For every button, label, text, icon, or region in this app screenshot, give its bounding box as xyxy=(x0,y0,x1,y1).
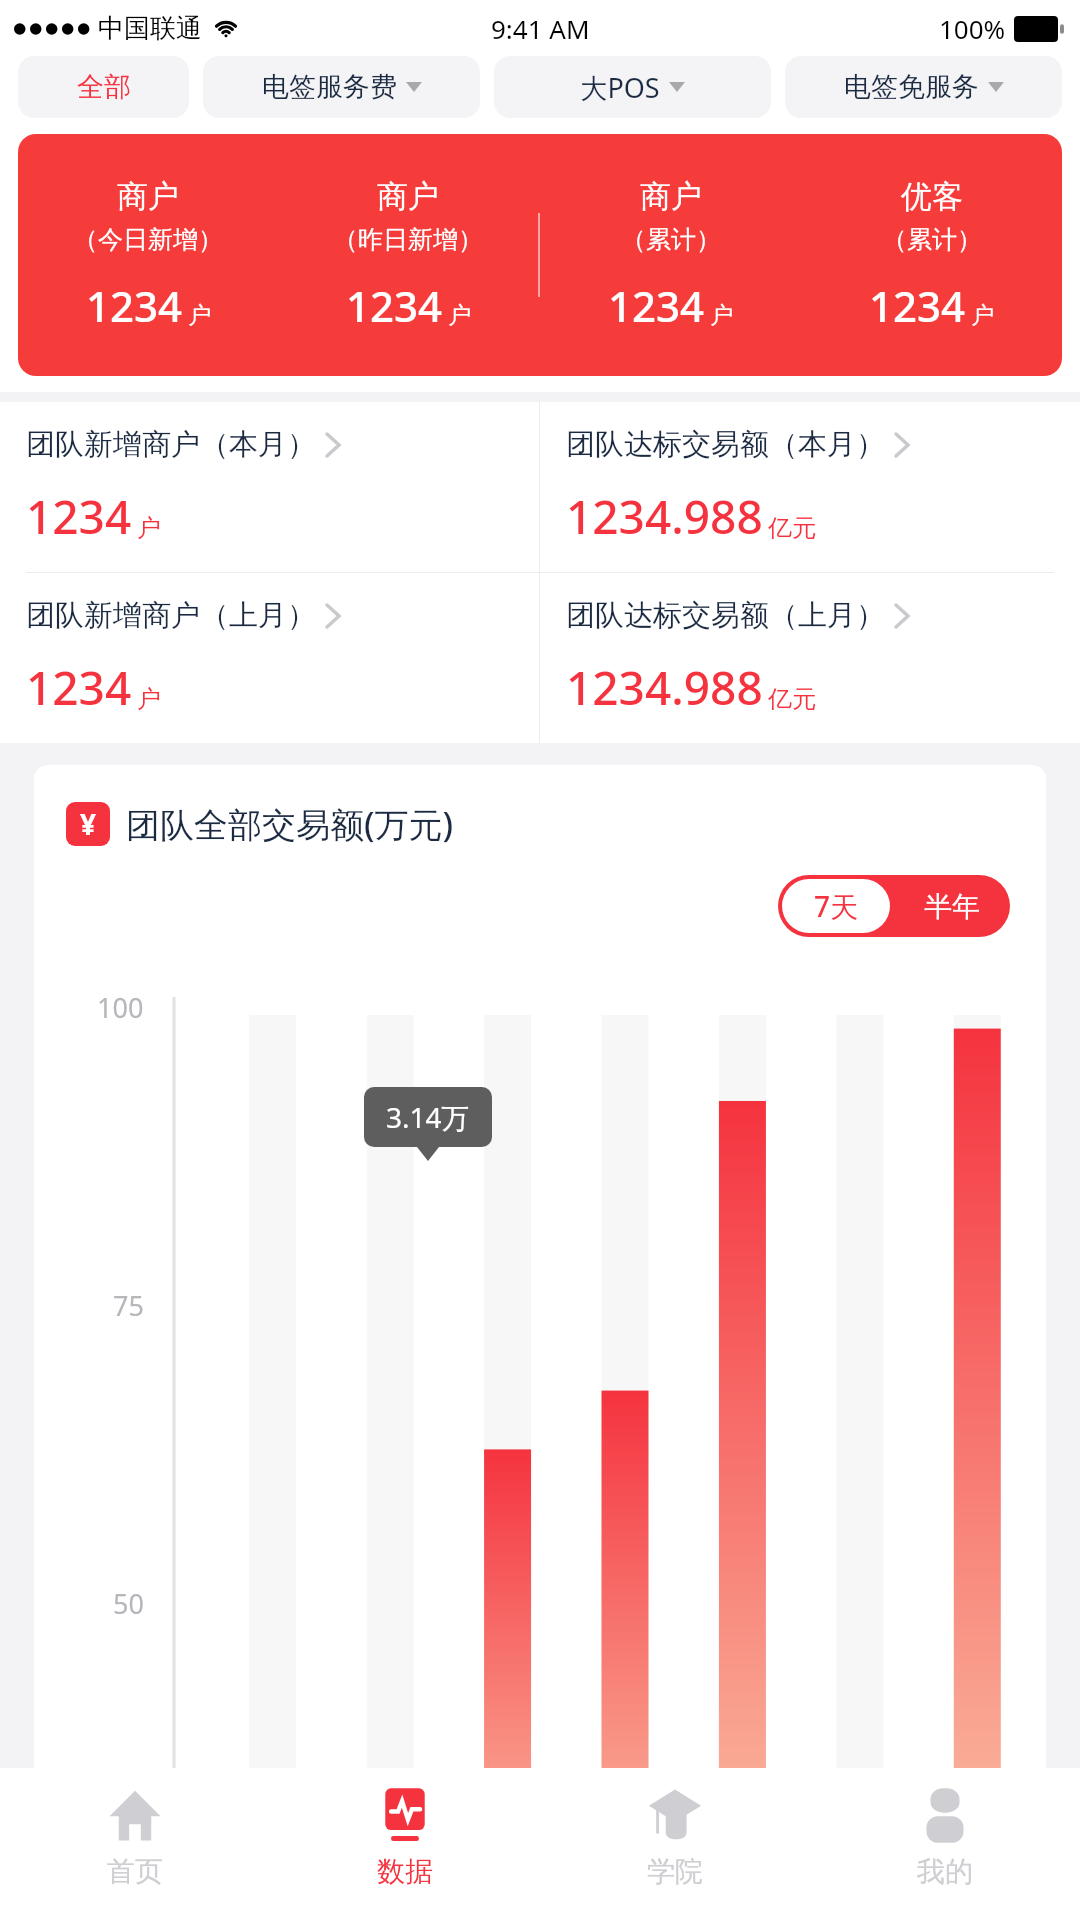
staticText: 户 xyxy=(710,301,733,330)
staticText: ¥ xyxy=(80,805,97,843)
staticText: 1234 xyxy=(26,485,132,548)
staticText: 团队达标交易额（本月） xyxy=(566,426,885,463)
staticText: 电签免服务 xyxy=(844,70,979,104)
staticText: 大POS xyxy=(580,69,660,106)
staticText: 户 xyxy=(448,301,471,330)
button[interactable]: 团队新增商户（本月） xyxy=(0,402,539,572)
staticText: 全部 xyxy=(77,70,131,104)
staticText: 半年 xyxy=(924,889,980,924)
staticText: 100 xyxy=(97,989,144,1026)
staticText: 户 xyxy=(137,684,161,714)
staticText: 1234.988 xyxy=(566,656,763,719)
staticText: 商户 xyxy=(640,177,702,216)
button[interactable]: 团队达标交易额（上月） xyxy=(540,573,1080,743)
staticText: 首页 xyxy=(107,1854,163,1889)
staticText: 亿元 xyxy=(768,513,816,543)
button[interactable]: 大POS xyxy=(494,56,771,118)
staticText: 团队达标交易额（上月） xyxy=(566,597,885,634)
button[interactable]: 电签服务费 xyxy=(203,56,480,118)
staticText: 75 xyxy=(113,1287,144,1324)
staticText: （累计） xyxy=(621,224,721,255)
staticText: 1234 xyxy=(26,656,132,719)
button[interactable]: 电签免服务 xyxy=(785,56,1062,118)
staticText: （累计） xyxy=(882,224,982,255)
staticText: （今日新增） xyxy=(73,224,223,255)
staticText: 亿元 xyxy=(768,684,816,714)
staticText: （昨日新增） xyxy=(333,224,483,255)
staticText: 中国联通 xyxy=(98,12,202,45)
staticText: 电签服务费 xyxy=(262,70,397,104)
staticText: 我的 xyxy=(917,1854,973,1889)
staticText: 团队新增商户（本月） xyxy=(26,426,316,463)
staticText: 9:41 AM xyxy=(491,11,590,46)
button[interactable]: 7天 xyxy=(782,879,890,933)
button[interactable]: 数据 xyxy=(270,1768,540,1920)
staticText: 50 xyxy=(113,1585,144,1622)
staticText: 团队新增商户（上月） xyxy=(26,597,316,634)
staticText: 7天 xyxy=(814,887,859,925)
staticText: 团队全部交易额(万元) xyxy=(126,801,454,847)
staticText: 商户 xyxy=(377,177,439,216)
staticText: 商户 xyxy=(117,177,179,216)
staticText: 1234 xyxy=(86,277,183,334)
button[interactable]: 半年 xyxy=(894,875,1010,937)
staticText: 数据 xyxy=(377,1854,433,1889)
staticText: 25 xyxy=(113,1883,144,1920)
staticText: 100% xyxy=(939,11,1006,46)
button[interactable]: 商户 xyxy=(18,134,1062,376)
button[interactable]: ¥ xyxy=(66,801,1046,847)
button[interactable]: 学院 xyxy=(540,1768,810,1920)
other: 首页 xyxy=(106,1786,164,1844)
button[interactable]: 团队新增商户（上月） xyxy=(0,573,539,743)
button[interactable]: 团队达标交易额（本月） xyxy=(540,402,1080,572)
staticText: 1234 xyxy=(346,277,443,334)
staticText: 户 xyxy=(971,301,994,330)
staticText: 3.14万 xyxy=(386,1098,470,1136)
staticText: 优客 xyxy=(901,177,963,216)
button[interactable]: 首页 xyxy=(0,1768,270,1920)
staticText: 1234.988 xyxy=(566,485,763,548)
staticText: 户 xyxy=(188,301,211,330)
button[interactable]: 我的 xyxy=(810,1768,1080,1920)
other: 数据 xyxy=(376,1786,434,1844)
other: 学院 xyxy=(646,1786,704,1844)
staticText: 1234 xyxy=(608,277,705,334)
button[interactable]: 全部 xyxy=(18,56,189,118)
staticText: 学院 xyxy=(647,1854,703,1889)
staticText: 1234 xyxy=(869,277,966,334)
staticText: 户 xyxy=(137,513,161,543)
other: 我的 xyxy=(916,1786,974,1844)
